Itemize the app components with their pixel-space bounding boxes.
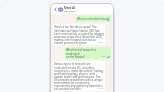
staticText: with Llama 3 [64, 10, 78, 13]
staticText: What kind of research is conducted on th… [66, 48, 110, 58]
button[interactable]: Here's a fun fact about space! The Inter… [53, 24, 105, 45]
staticText: What is a fun fact in here? [77, 17, 110, 21]
staticText: Meta AI [64, 6, 75, 10]
staticText: 10:24 [101, 18, 107, 21]
staticText: Here's a fun fact about space! The Inter… [54, 25, 104, 44]
button[interactable]: What kind of research is conducted on th… [65, 47, 111, 59]
staticText: 10:24 [98, 41, 104, 44]
staticText: 10:24 [101, 55, 107, 58]
staticText: 10:24 [98, 87, 104, 90]
button[interactable]: What is a fun fact in here? [76, 16, 111, 22]
staticText: Various types of research are conducted … [54, 62, 104, 90]
button[interactable]: Back [53, 7, 57, 11]
button[interactable]: Various types of research are conducted … [53, 61, 105, 91]
